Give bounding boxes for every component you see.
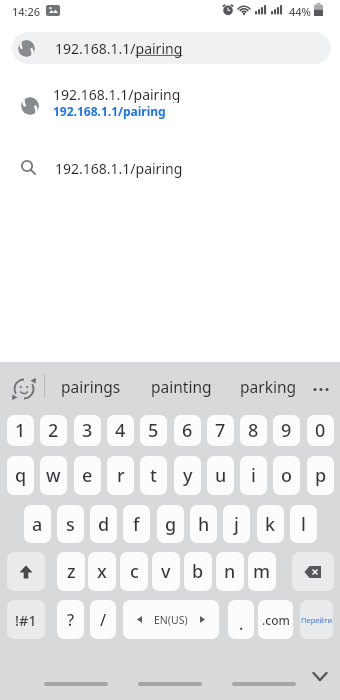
staticText: 0 xyxy=(315,418,326,443)
staticText: t xyxy=(150,463,157,488)
staticText: . xyxy=(239,613,244,635)
button[interactable] xyxy=(7,552,45,591)
button[interactable]: !#1 xyxy=(7,600,45,639)
button[interactable]: g xyxy=(157,505,184,543)
button[interactable]: k xyxy=(257,505,284,543)
staticText: 192.168.1.1/pairing xyxy=(53,85,181,103)
button[interactable]: 6 xyxy=(174,415,201,446)
staticText: r xyxy=(117,463,125,488)
button[interactable]: 192.168.1.1/pairing xyxy=(12,32,331,64)
staticText: / xyxy=(100,609,107,631)
staticText: parking xyxy=(240,376,297,397)
button[interactable]: u xyxy=(207,456,234,495)
button[interactable]: EN(US) xyxy=(123,600,219,639)
button[interactable]: d xyxy=(90,505,117,543)
button[interactable]: Перейти xyxy=(300,600,333,639)
button[interactable]: j xyxy=(223,505,250,543)
button[interactable]: / xyxy=(90,600,116,639)
staticText: 192.168.1.1/pairing xyxy=(55,39,183,58)
button[interactable]: 192.168.1.1/pairing xyxy=(0,82,340,126)
staticText: !#1 xyxy=(15,610,37,630)
button[interactable]: .com xyxy=(258,600,293,639)
button[interactable]: 0 xyxy=(307,415,334,446)
staticText: y xyxy=(183,463,193,488)
button[interactable]: painting xyxy=(144,371,219,401)
staticText: 5 xyxy=(148,418,159,443)
button[interactable]: 2 xyxy=(40,415,67,446)
button[interactable]: c xyxy=(120,552,148,591)
staticText: 44% xyxy=(289,4,311,18)
button[interactable] xyxy=(306,665,334,689)
button[interactable]: r xyxy=(107,456,134,495)
staticText: f xyxy=(133,512,140,537)
button[interactable] xyxy=(44,682,108,686)
staticText: g xyxy=(165,512,177,537)
staticText: Перейти xyxy=(301,615,333,625)
staticText: k xyxy=(265,512,276,537)
staticText: e xyxy=(82,463,93,488)
button[interactable]: t xyxy=(140,456,167,495)
button[interactable]: i xyxy=(240,456,267,495)
button[interactable]: z xyxy=(57,552,85,591)
button[interactable]: 3 xyxy=(74,415,101,446)
button[interactable]: 192.168.1.1/pairing xyxy=(0,152,340,184)
button[interactable]: w xyxy=(40,456,67,495)
button[interactable]: f xyxy=(123,505,150,543)
button[interactable]: x xyxy=(88,552,116,591)
button[interactable]: 7 xyxy=(207,415,234,446)
staticText: v xyxy=(161,559,171,584)
staticText: x xyxy=(97,559,107,584)
button[interactable] xyxy=(10,375,38,403)
button[interactable] xyxy=(306,375,336,403)
button[interactable]: 1 xyxy=(7,415,34,446)
button[interactable]: y xyxy=(174,456,201,495)
staticText: ? xyxy=(67,609,75,631)
button[interactable]: l xyxy=(290,505,317,543)
staticText: p xyxy=(315,463,327,488)
staticText: 7 xyxy=(215,418,226,443)
staticText: 192.168.1.1/pairing xyxy=(53,103,166,119)
button[interactable]: n xyxy=(216,552,244,591)
button[interactable]: parking xyxy=(232,371,305,401)
staticText: i xyxy=(251,463,256,488)
staticText: 14:26 xyxy=(12,4,41,18)
button[interactable]: h xyxy=(190,505,217,543)
staticText: z xyxy=(67,559,76,584)
staticText: l xyxy=(301,512,306,537)
staticText: h xyxy=(198,512,210,537)
staticText: w xyxy=(46,463,61,488)
staticText: n xyxy=(224,559,236,584)
staticText: pairings xyxy=(61,376,121,397)
button[interactable]: s xyxy=(57,505,84,543)
staticText: EN(US) xyxy=(154,613,188,627)
button[interactable] xyxy=(232,682,296,686)
button[interactable] xyxy=(292,552,334,591)
staticText: s xyxy=(66,512,75,537)
button[interactable]: ? xyxy=(57,600,84,639)
button[interactable]: m xyxy=(248,552,276,591)
button[interactable]: 8 xyxy=(240,415,267,446)
button[interactable]: b xyxy=(184,552,212,591)
staticText: 8 xyxy=(248,418,259,443)
staticText: b xyxy=(192,559,204,584)
staticText: 9 xyxy=(281,418,292,443)
button[interactable]: e xyxy=(74,456,101,495)
staticText: o xyxy=(281,463,292,488)
staticText: 3 xyxy=(82,418,93,443)
button[interactable]: pairings xyxy=(52,371,129,401)
button[interactable]: q xyxy=(7,456,34,495)
button[interactable]: 9 xyxy=(273,415,300,446)
staticText: 2 xyxy=(48,418,59,443)
button[interactable]: p xyxy=(307,456,334,495)
button[interactable]: o xyxy=(273,456,300,495)
staticText: 192.168.1.1/pairing xyxy=(55,159,183,178)
staticText: q xyxy=(15,463,27,488)
staticText: a xyxy=(32,512,43,537)
button[interactable]: . xyxy=(228,600,254,639)
button[interactable]: 4 xyxy=(107,415,134,446)
button[interactable]: a xyxy=(24,505,51,543)
button[interactable]: v xyxy=(152,552,180,591)
button[interactable] xyxy=(138,682,202,686)
button[interactable]: 5 xyxy=(140,415,167,446)
staticText: d xyxy=(98,512,110,537)
